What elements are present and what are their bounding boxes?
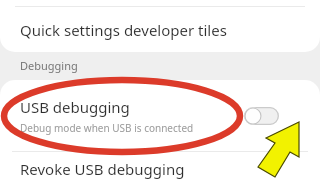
button[interactable]: Revoke USB debugging [0, 152, 320, 180]
staticText: Quick settings developer tiles [20, 20, 227, 40]
button[interactable]: USB debugging [0, 80, 320, 151]
staticText: Debug mode when USB is connected [20, 121, 194, 135]
button[interactable]: USB debugging switch, off [239, 96, 283, 136]
button[interactable]: Quick settings developer tiles [0, 0, 320, 52]
staticText: Debugging [20, 58, 78, 73]
staticText: Revoke USB debugging [20, 159, 185, 179]
staticText: USB debugging [20, 97, 130, 117]
